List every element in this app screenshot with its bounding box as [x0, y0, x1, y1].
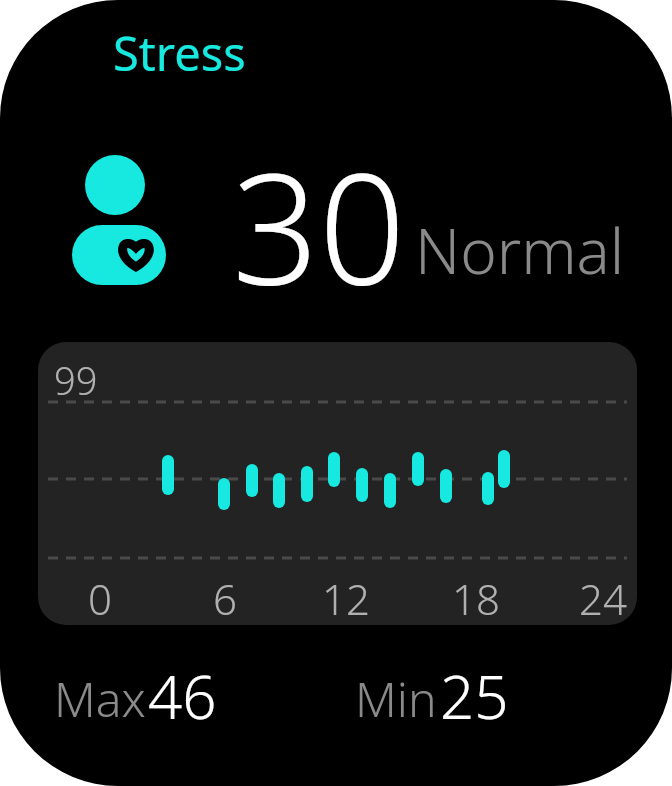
staticText: 6 — [213, 570, 237, 618]
other: Stress icon — [68, 148, 178, 293]
button[interactable]: 99 — [38, 342, 637, 625]
staticText: Normal — [415, 208, 625, 292]
staticText: 12 — [322, 570, 370, 618]
staticText: 24 — [579, 570, 627, 618]
button[interactable]: Stress — [113, 21, 246, 85]
staticText: 0 — [88, 570, 112, 618]
staticText: Min — [355, 666, 437, 731]
staticText: Max — [54, 666, 146, 731]
staticText: 46 — [148, 655, 217, 737]
staticText: 25 — [440, 655, 509, 737]
staticText: 99 — [54, 354, 98, 406]
staticText: 30 — [232, 122, 406, 329]
staticText: 18 — [452, 570, 500, 618]
